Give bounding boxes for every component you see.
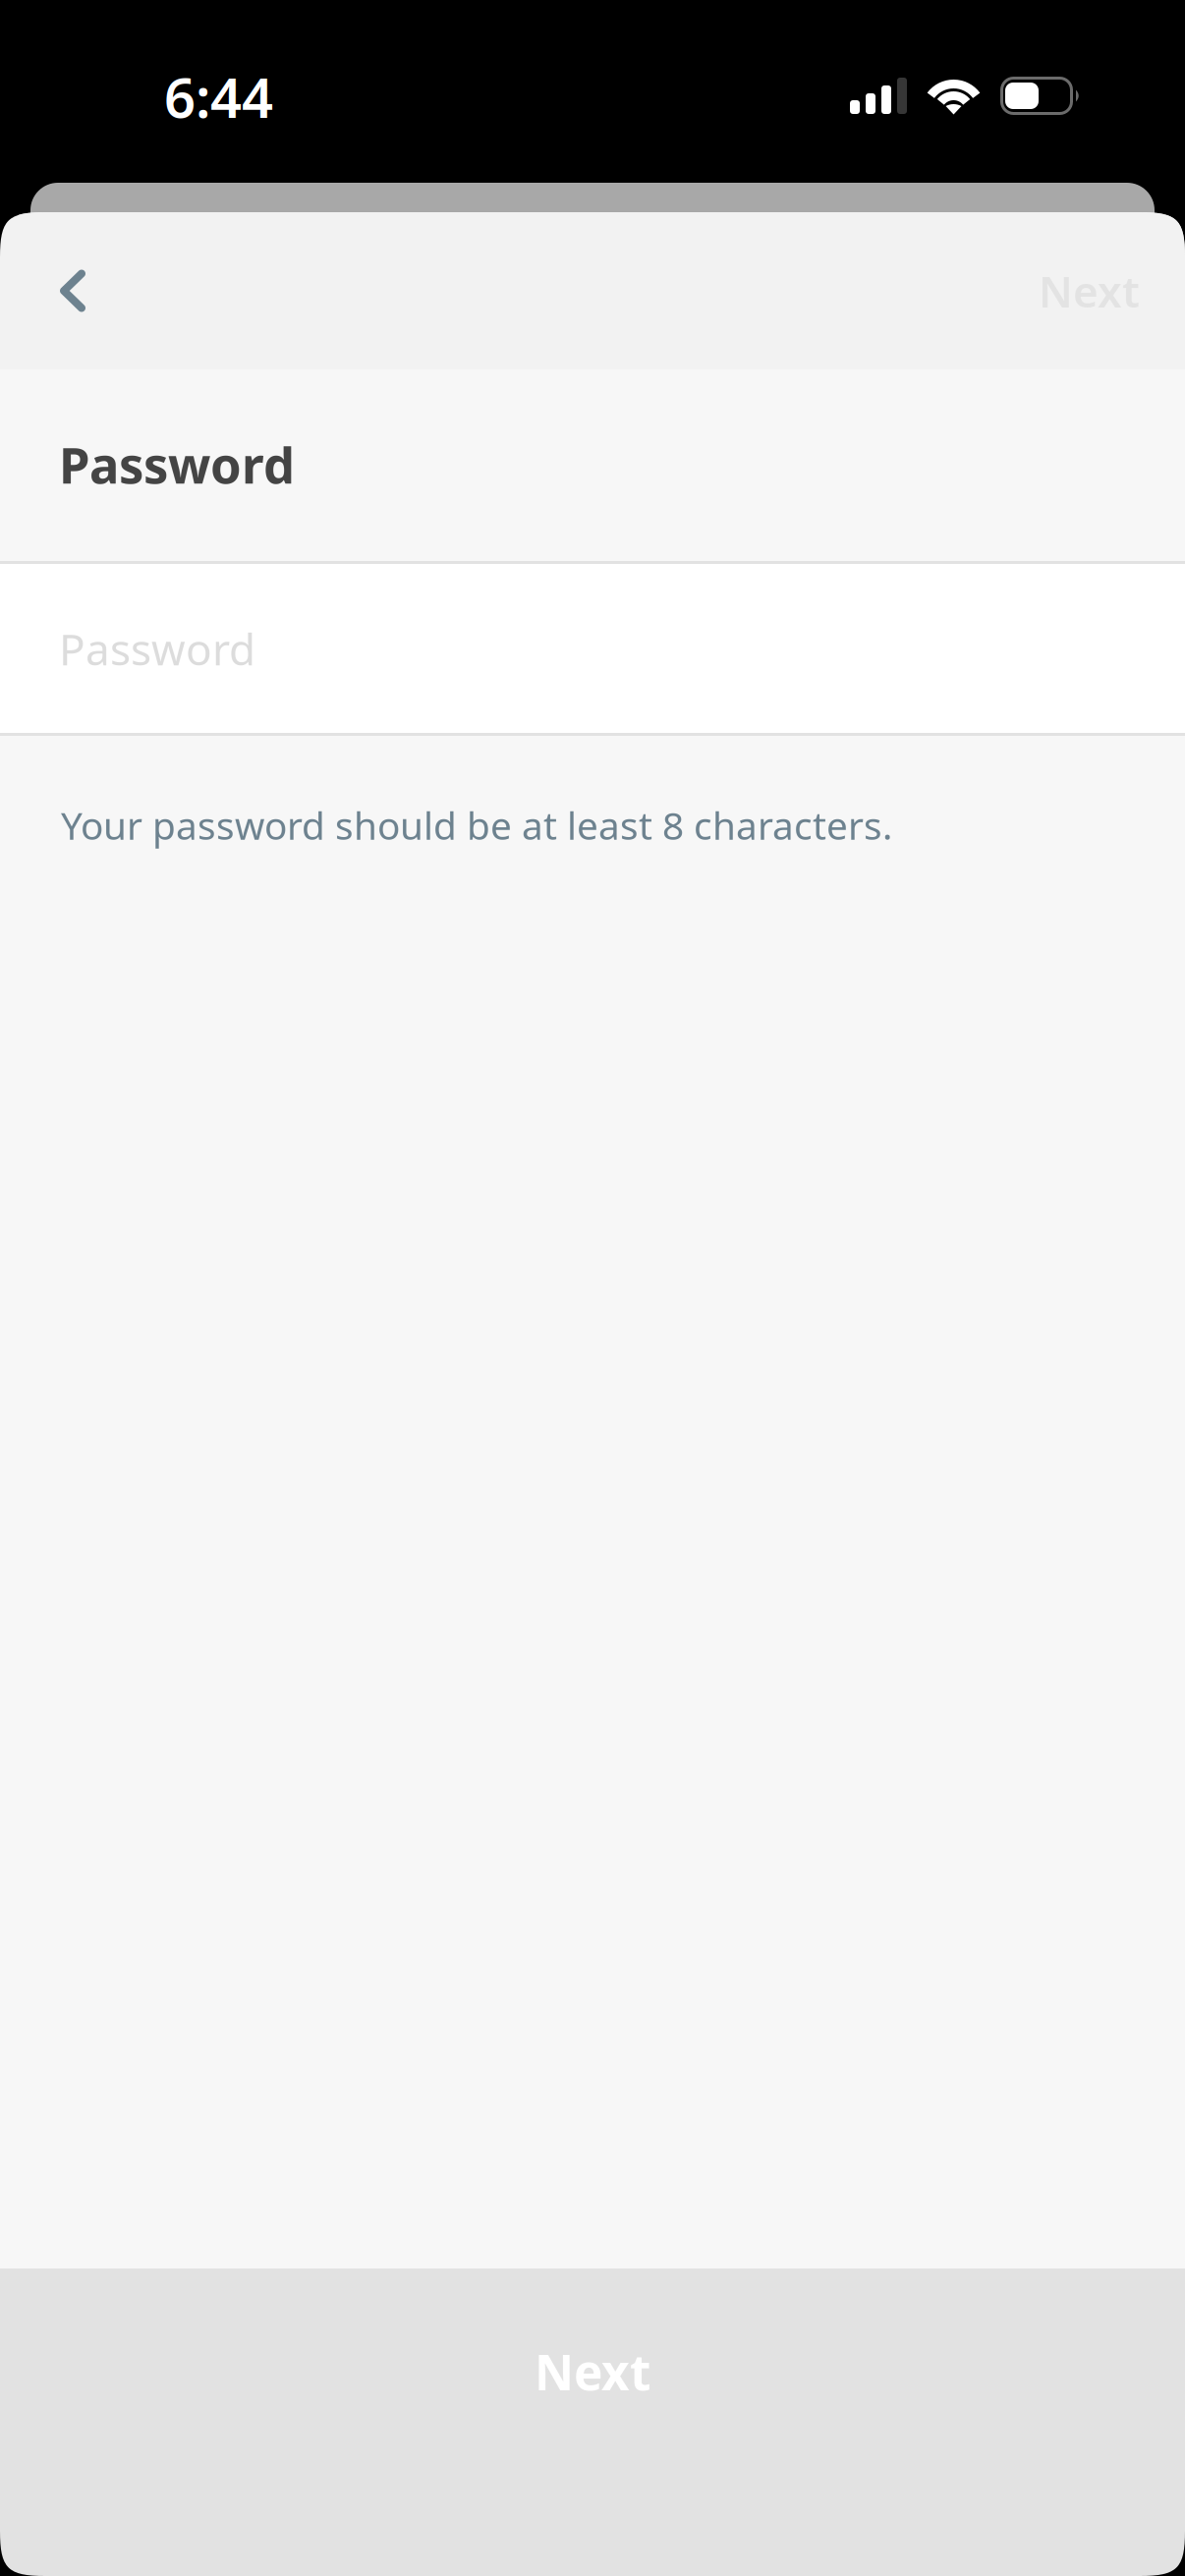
staticText: Password — [59, 431, 295, 497]
staticText: Your password should be at least 8 chara… — [61, 800, 892, 850]
button[interactable]: Next — [973, 212, 1185, 369]
staticText: Password — [59, 620, 255, 677]
staticText: 6:44 — [164, 60, 273, 133]
staticText: Next — [1039, 262, 1140, 319]
button[interactable]: Password — [0, 564, 1185, 733]
button[interactable]: Next — [0, 2268, 1185, 2576]
staticText: Next — [535, 2339, 650, 2404]
button[interactable]: Back — [19, 212, 127, 369]
